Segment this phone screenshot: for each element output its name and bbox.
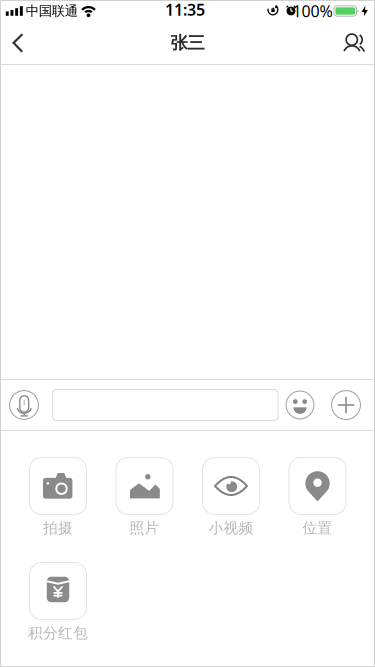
button[interactable]: 积分红包 — [29, 562, 87, 642]
button[interactable]: Emoji — [285, 390, 314, 419]
button[interactable]: 照片 — [115, 457, 173, 537]
staticText: 拍摄 — [43, 519, 73, 537]
button[interactable]: 小视频 — [202, 457, 260, 537]
staticText: 小视频 — [208, 519, 253, 537]
button[interactable]: 位置 — [288, 457, 346, 537]
button[interactable]: Chat members — [342, 22, 375, 64]
button[interactable]: Message — [52, 389, 278, 421]
staticText: 位置 — [302, 519, 332, 537]
staticText: 张三 — [170, 32, 204, 54]
button[interactable]: Back — [0, 22, 23, 64]
staticText: 积分红包 — [28, 624, 88, 642]
button[interactable]: Hold to talk — [9, 390, 39, 420]
staticText: 照片 — [129, 519, 159, 537]
button[interactable]: 拍摄 — [29, 457, 87, 537]
staticText: 100% — [292, 0, 332, 22]
staticText: 中国联通 — [26, 3, 78, 19]
staticText: 11:35 — [165, 0, 205, 20]
button[interactable]: More — [331, 390, 361, 420]
